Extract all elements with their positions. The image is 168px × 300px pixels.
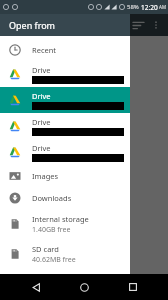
staticText: Drive bbox=[32, 143, 51, 153]
staticText: 12:20 bbox=[141, 3, 158, 12]
button[interactable]: Internal storage bbox=[0, 209, 130, 239]
staticText: Recent bbox=[32, 45, 57, 55]
button[interactable]: Drive bbox=[0, 113, 130, 139]
button[interactable]: Back bbox=[23, 274, 49, 300]
button[interactable]: Drive bbox=[0, 139, 130, 165]
staticText: IMG_20140103.png bbox=[6, 129, 66, 138]
button[interactable]: Recents bbox=[120, 274, 146, 300]
staticText: 58% bbox=[127, 3, 139, 11]
button[interactable]: Sort bbox=[128, 15, 148, 35]
button[interactable]: More options bbox=[148, 17, 164, 33]
staticText: IMG_20140101.png bbox=[6, 77, 66, 86]
staticText: 1.40GB free bbox=[32, 225, 71, 235]
staticText: IMG_20140108.png bbox=[6, 259, 66, 268]
staticText: IMG_20140104.png bbox=[6, 155, 66, 164]
staticText: Drive bbox=[32, 91, 51, 101]
staticText: IMG_20140102.png bbox=[6, 103, 66, 112]
button[interactable]: Drive bbox=[0, 61, 130, 87]
staticText: Downloads bbox=[32, 193, 72, 203]
button[interactable]: Drive bbox=[0, 87, 130, 113]
button[interactable]: Home bbox=[71, 274, 97, 300]
button[interactable]: Images bbox=[0, 165, 130, 187]
staticText: Internal storage bbox=[32, 214, 89, 224]
staticText: Drive bbox=[32, 117, 51, 127]
staticText: Images bbox=[32, 171, 59, 181]
staticText: Drive bbox=[32, 65, 51, 75]
staticText: 40.62MB free bbox=[32, 255, 76, 265]
staticText: AM bbox=[159, 4, 166, 10]
button[interactable]: SD card bbox=[0, 239, 130, 269]
staticText: IMG_20140100.png bbox=[6, 51, 66, 60]
staticText: SD card bbox=[32, 244, 59, 254]
button[interactable]: Recent bbox=[0, 39, 130, 61]
staticText: Open from bbox=[9, 19, 56, 31]
button[interactable]: Downloads bbox=[0, 187, 130, 209]
